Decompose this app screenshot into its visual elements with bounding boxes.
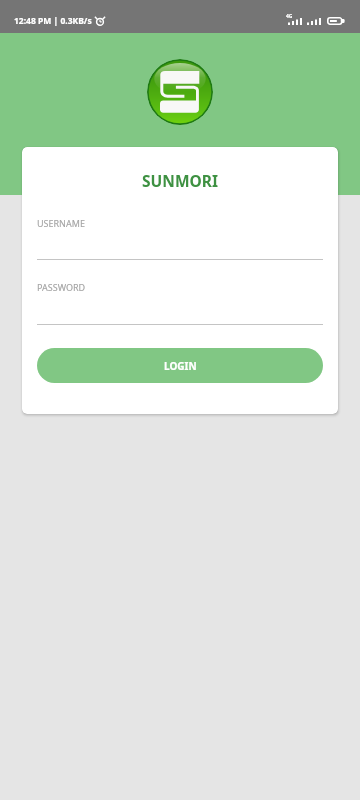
staticText: USERNAME	[37, 217, 85, 229]
staticText: SUNMORI	[37, 170, 323, 191]
staticText: LOGIN	[164, 359, 197, 373]
staticText: PASSWORD	[37, 281, 86, 293]
button[interactable]: USERNAME	[37, 217, 323, 260]
button[interactable]: PASSWORD	[37, 281, 323, 325]
button[interactable]: LOGIN	[37, 348, 323, 383]
button[interactable]: Sunmori logo	[147, 59, 213, 125]
staticText: 12:48 PM | 0.3KB/s	[14, 15, 92, 27]
staticText: 4G	[286, 13, 293, 20]
